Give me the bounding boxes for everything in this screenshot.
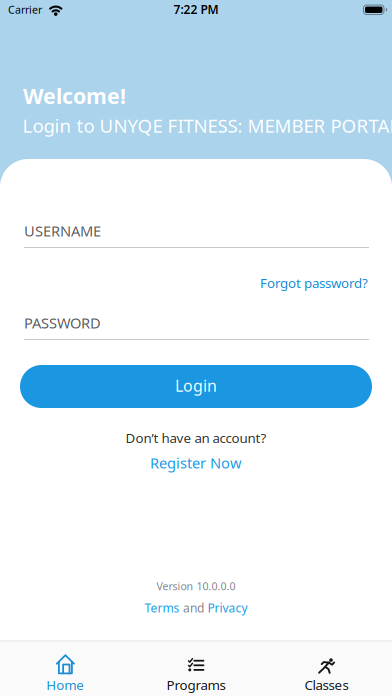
button[interactable]: Terms (144, 600, 179, 616)
staticText: Terms (144, 600, 179, 616)
staticText: Register Now (150, 453, 242, 472)
staticText: Login to UNYQE FITNESS: MEMBER PORTAL (22, 113, 392, 138)
staticText: Home (46, 676, 84, 694)
button[interactable]: Classes (261, 641, 392, 696)
staticText: Carrier (8, 2, 42, 17)
staticText: USERNAME (24, 221, 101, 240)
staticText: Classes (305, 676, 349, 694)
button[interactable]: Privacy (207, 600, 247, 616)
staticText: Welcome! (23, 81, 126, 110)
button[interactable]: Login (20, 365, 372, 408)
staticText: 7:22 PM (173, 1, 218, 17)
button[interactable]: Register Now (150, 453, 242, 472)
staticText: Don’t have an account? (125, 429, 266, 447)
button[interactable]: Home (0, 641, 131, 696)
staticText: Forgot password? (260, 274, 368, 292)
button[interactable]: Programs (131, 641, 261, 696)
button[interactable]: Forgot password? (260, 274, 368, 292)
staticText: and (183, 600, 204, 616)
staticText: Login (175, 375, 217, 396)
staticText: Version 10.0.0.0 (156, 579, 235, 593)
staticText: Programs (166, 676, 225, 694)
staticText: PASSWORD (24, 313, 101, 332)
staticText: Privacy (207, 600, 247, 616)
